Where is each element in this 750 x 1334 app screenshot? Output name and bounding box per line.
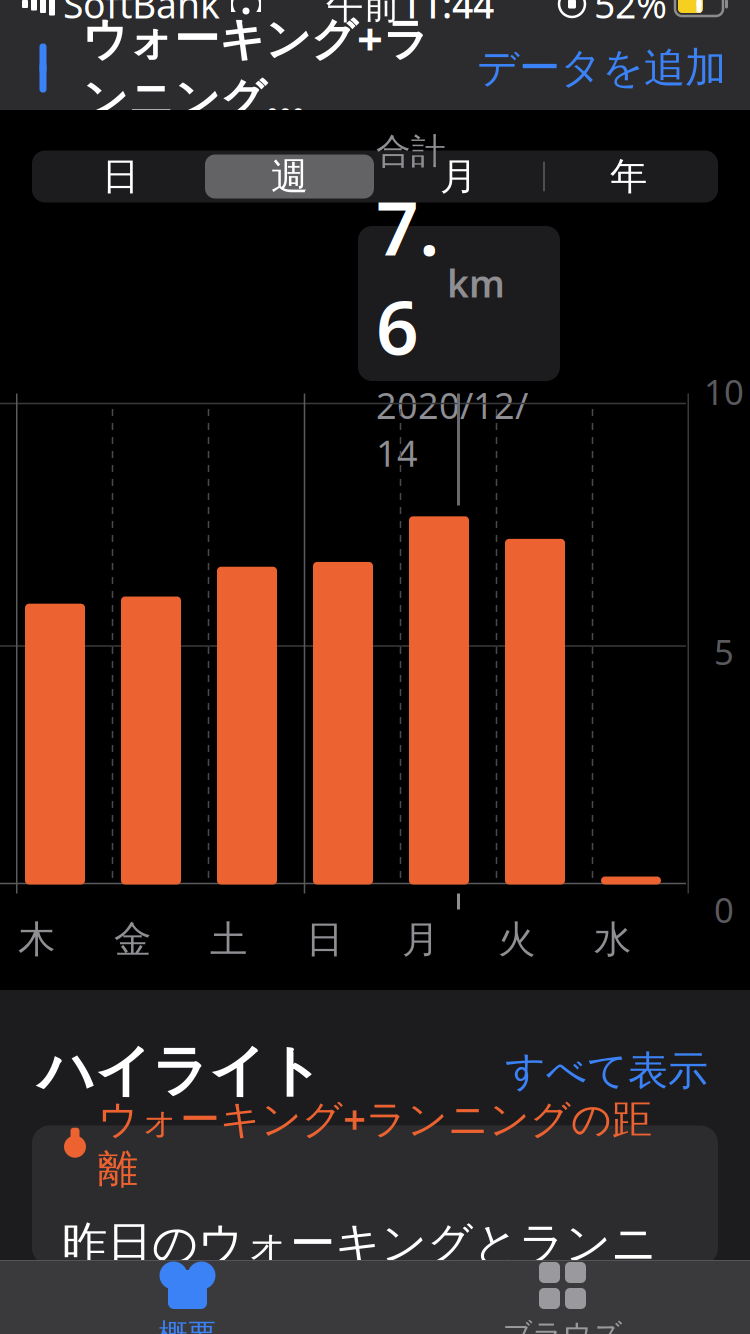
button[interactable]: 概要	[0, 1261, 375, 1334]
staticText: 金	[114, 917, 151, 962]
staticText: 2020/12/14	[376, 381, 528, 477]
staticText: 0	[714, 886, 734, 932]
staticText: 日	[306, 917, 343, 962]
staticText: 概要	[158, 1316, 216, 1334]
staticText: 年	[610, 154, 647, 199]
staticText: km	[447, 258, 505, 308]
button[interactable]: 日	[36, 154, 205, 198]
staticText: ブラウズ	[502, 1316, 622, 1334]
staticText: すべて表示	[505, 1046, 708, 1095]
staticText: 52%	[594, 0, 667, 29]
staticText: 土	[210, 917, 247, 962]
button[interactable]: 年	[544, 154, 713, 198]
button[interactable]: 戻る	[18, 35, 76, 101]
staticText: ウォーキング+ランニングの距離	[98, 1092, 652, 1194]
staticText: 5	[714, 628, 734, 674]
staticText: 水	[594, 917, 631, 962]
button[interactable]: ウォーキング+ランニングの距離	[32, 1125, 718, 1265]
button[interactable]: ブラウズ	[375, 1261, 750, 1334]
staticText: 7.6	[376, 177, 440, 375]
staticText: ウォーキング+ランニング…	[82, 8, 429, 128]
staticText: 月	[440, 154, 477, 199]
staticText: データを追加	[477, 43, 726, 93]
staticText: ハイライト	[38, 1037, 323, 1105]
staticText: 月	[402, 917, 439, 962]
staticText: 火	[498, 917, 535, 962]
staticText: 合計	[376, 130, 446, 173]
button[interactable]: 月	[374, 154, 543, 198]
staticText: 昨日のウォーキングとランニングの距離は	[62, 1216, 657, 1327]
staticText: SoftBank	[63, 0, 220, 29]
staticText: 10	[704, 368, 744, 414]
staticText: 週	[271, 154, 308, 199]
staticText: 日	[102, 154, 139, 199]
button[interactable]: 週	[205, 154, 374, 198]
button[interactable]: データを追加	[471, 35, 732, 101]
staticText: 午前11:44	[326, 0, 494, 29]
button[interactable]: すべて表示	[501, 1038, 712, 1103]
staticText: 木	[18, 917, 55, 962]
